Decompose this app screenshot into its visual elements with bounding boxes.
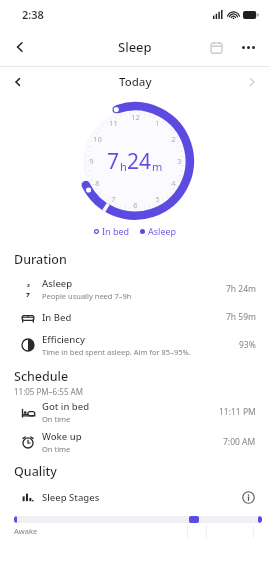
button[interactable]: Back <box>0 28 40 66</box>
button[interactable]: Next day <box>234 67 270 97</box>
staticText: Sleep Stages <box>42 491 240 504</box>
staticText: 11 <box>109 118 118 128</box>
button[interactable]: Got in bed <box>0 397 270 427</box>
staticText: Sleep <box>118 38 152 56</box>
staticText: Duration <box>14 251 67 268</box>
staticText: z <box>26 289 30 297</box>
staticText: 24 <box>127 147 152 176</box>
button[interactable]: Previous day <box>0 67 36 97</box>
staticText: 6 <box>133 200 138 210</box>
staticText: 93% <box>239 339 256 351</box>
staticText: 11:11 PM <box>219 406 256 418</box>
button[interactable]: Calendar <box>200 31 232 63</box>
staticText: Woke up <box>42 430 82 443</box>
staticText: 11:05 PM–6:55 AM <box>14 386 83 397</box>
staticText: Asleep <box>148 225 177 237</box>
staticText: Asleep <box>42 277 73 290</box>
staticText: 5 <box>155 194 160 204</box>
staticText: 7:00 AM <box>223 436 256 448</box>
staticText: 10 <box>93 134 102 144</box>
staticText: 9 <box>89 156 94 166</box>
staticText: In Bed <box>42 311 72 324</box>
staticText: 7h 59m <box>226 311 256 323</box>
button[interactable]: Sleep Stages <box>0 484 270 510</box>
staticText: 1 <box>155 118 160 128</box>
staticText: 7 <box>111 194 116 204</box>
button[interactable]: Efficiency <box>0 330 270 360</box>
staticText: 4 <box>171 178 176 188</box>
staticText: In bed <box>102 225 130 237</box>
staticText: h <box>120 159 127 174</box>
staticText: Schedule <box>14 368 69 385</box>
staticText: Awake <box>14 526 38 536</box>
button[interactable]: Woke up <box>0 427 270 457</box>
staticText: Time in bed spent asleep. Aim for 85–95%… <box>42 347 191 357</box>
staticText: 7h 24m <box>226 283 256 295</box>
button[interactable]: Info about sleep stages <box>240 489 256 505</box>
staticText: m <box>152 159 163 174</box>
staticText: 2:38 <box>22 7 44 22</box>
staticText: Quality <box>14 463 57 480</box>
button[interactable]: In Bed <box>0 304 270 330</box>
staticText: 2 <box>171 134 176 144</box>
staticText: Got in bed <box>42 400 90 413</box>
staticText: People usually need 7–9h <box>42 291 132 301</box>
button[interactable]: More options <box>232 31 264 63</box>
staticText: 7 <box>107 147 120 176</box>
staticText: 12 <box>131 112 140 122</box>
staticText: Today <box>119 74 152 90</box>
button[interactable]: z <box>0 274 270 304</box>
staticText: On time <box>42 414 71 424</box>
staticText: 8 <box>95 178 100 188</box>
staticText: 3 <box>177 156 182 166</box>
staticText: z <box>27 281 30 289</box>
staticText: On time <box>42 444 71 454</box>
staticText: Efficiency <box>42 333 85 346</box>
